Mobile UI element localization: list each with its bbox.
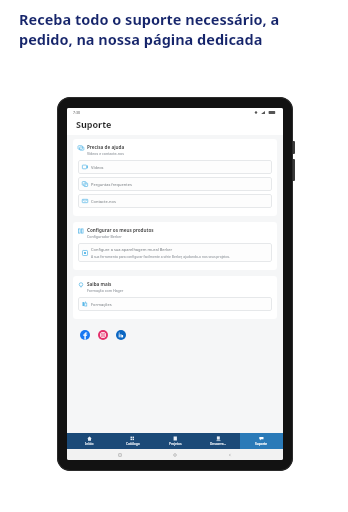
button[interactable]: LinkedIn bbox=[116, 330, 126, 340]
button[interactable]: Início bbox=[67, 433, 111, 449]
other: Home bbox=[173, 453, 177, 457]
staticText: pedido, na nossa página dedicada bbox=[19, 29, 263, 49]
staticText: Saiba mais bbox=[87, 281, 112, 287]
staticText: Configurador Berker bbox=[87, 234, 122, 239]
button[interactable]: Perguntas frequentes bbox=[78, 177, 272, 191]
staticText: Receba todo o suporte necessário, a bbox=[19, 9, 280, 29]
button[interactable]: Suporte bbox=[240, 433, 283, 449]
staticText: Contacte-nos bbox=[91, 199, 116, 204]
staticText: Configurar os meus produtos bbox=[87, 227, 154, 233]
button[interactable]: Catálogo bbox=[111, 433, 154, 449]
button[interactable]: Vídeos bbox=[78, 160, 272, 174]
staticText: Vídeos bbox=[91, 165, 104, 170]
staticText: Formações bbox=[91, 302, 112, 307]
staticText: Precisa de ajuda bbox=[87, 144, 125, 150]
staticText: Perguntas frequentes bbox=[91, 182, 132, 187]
button[interactable]: Configure a sua aparelhagem mural Berker bbox=[78, 243, 272, 262]
button[interactable]: Contacte-nos bbox=[78, 194, 272, 208]
other: Back bbox=[228, 453, 232, 457]
other: Recents bbox=[118, 453, 122, 457]
staticText: Projetos bbox=[169, 442, 182, 446]
button[interactable]: Instagram bbox=[98, 330, 108, 340]
staticText: Descarre... bbox=[210, 442, 227, 446]
staticText: 7:30 bbox=[73, 110, 80, 115]
staticText: Catálogo bbox=[126, 442, 140, 446]
staticText: Vídeos e contacte-nos bbox=[87, 151, 124, 156]
staticText: Suporte bbox=[76, 118, 112, 130]
button[interactable]: Projetos bbox=[154, 433, 197, 449]
staticText: Formação com Hager bbox=[87, 288, 124, 293]
staticText: Suporte bbox=[255, 442, 268, 446]
button[interactable]: Formações bbox=[78, 297, 272, 311]
button[interactable]: Descarre... bbox=[197, 433, 240, 449]
staticText: A sua ferramenta para configurar facilme… bbox=[91, 254, 231, 258]
staticText: Configure a sua aparelhagem mural Berker bbox=[91, 247, 173, 252]
button[interactable]: Facebook bbox=[80, 330, 90, 340]
staticText: Início bbox=[85, 442, 94, 446]
